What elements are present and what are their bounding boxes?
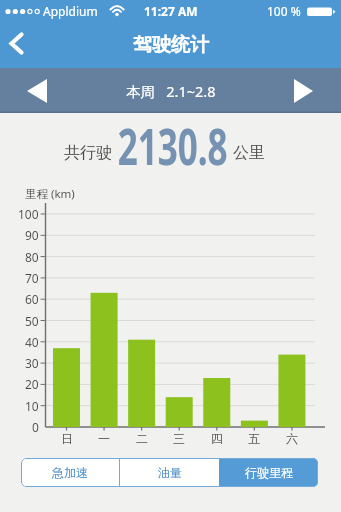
staticText: 90 — [25, 227, 39, 243]
staticText: 三 — [173, 431, 185, 446]
staticText: 四 — [211, 431, 223, 446]
staticText: 共行驶 — [64, 143, 112, 163]
button[interactable] — [281, 68, 341, 113]
staticText: 本周 2.1~2.8 — [126, 81, 216, 101]
staticText: 30 — [25, 355, 39, 371]
staticText: Appldium — [43, 3, 98, 19]
staticText: 100 % — [267, 3, 301, 19]
staticText: 50 — [25, 313, 39, 329]
staticText: 二 — [136, 431, 148, 446]
staticText: 40 — [25, 334, 39, 350]
staticText: 0 — [32, 419, 39, 435]
staticText: 日 — [61, 431, 73, 446]
staticText: 10 — [25, 398, 39, 414]
staticText: 2130.8 — [118, 112, 228, 180]
staticText: 70 — [25, 270, 39, 286]
staticText: 一 — [98, 431, 110, 446]
staticText: 驾驶统计 — [133, 33, 209, 57]
staticText: 公里 — [233, 143, 265, 163]
button[interactable] — [0, 26, 36, 62]
staticText: 80 — [25, 249, 39, 265]
staticText: 五 — [248, 431, 260, 446]
button[interactable]: 急加速 — [21, 458, 119, 487]
staticText: 行驶里程 — [245, 465, 293, 480]
staticText: 油量 — [158, 465, 182, 480]
staticText: 里程 (km) — [25, 186, 75, 202]
button[interactable] — [0, 68, 60, 113]
button[interactable]: 油量 — [120, 458, 219, 487]
staticText: 六 — [286, 431, 298, 446]
staticText: 急加速 — [52, 465, 88, 480]
staticText: 11:27 AM — [144, 3, 198, 19]
button[interactable]: 行驶里程 — [219, 458, 318, 487]
staticText: 20 — [25, 376, 39, 392]
staticText: 60 — [25, 291, 39, 307]
staticText: 100 — [18, 206, 39, 222]
